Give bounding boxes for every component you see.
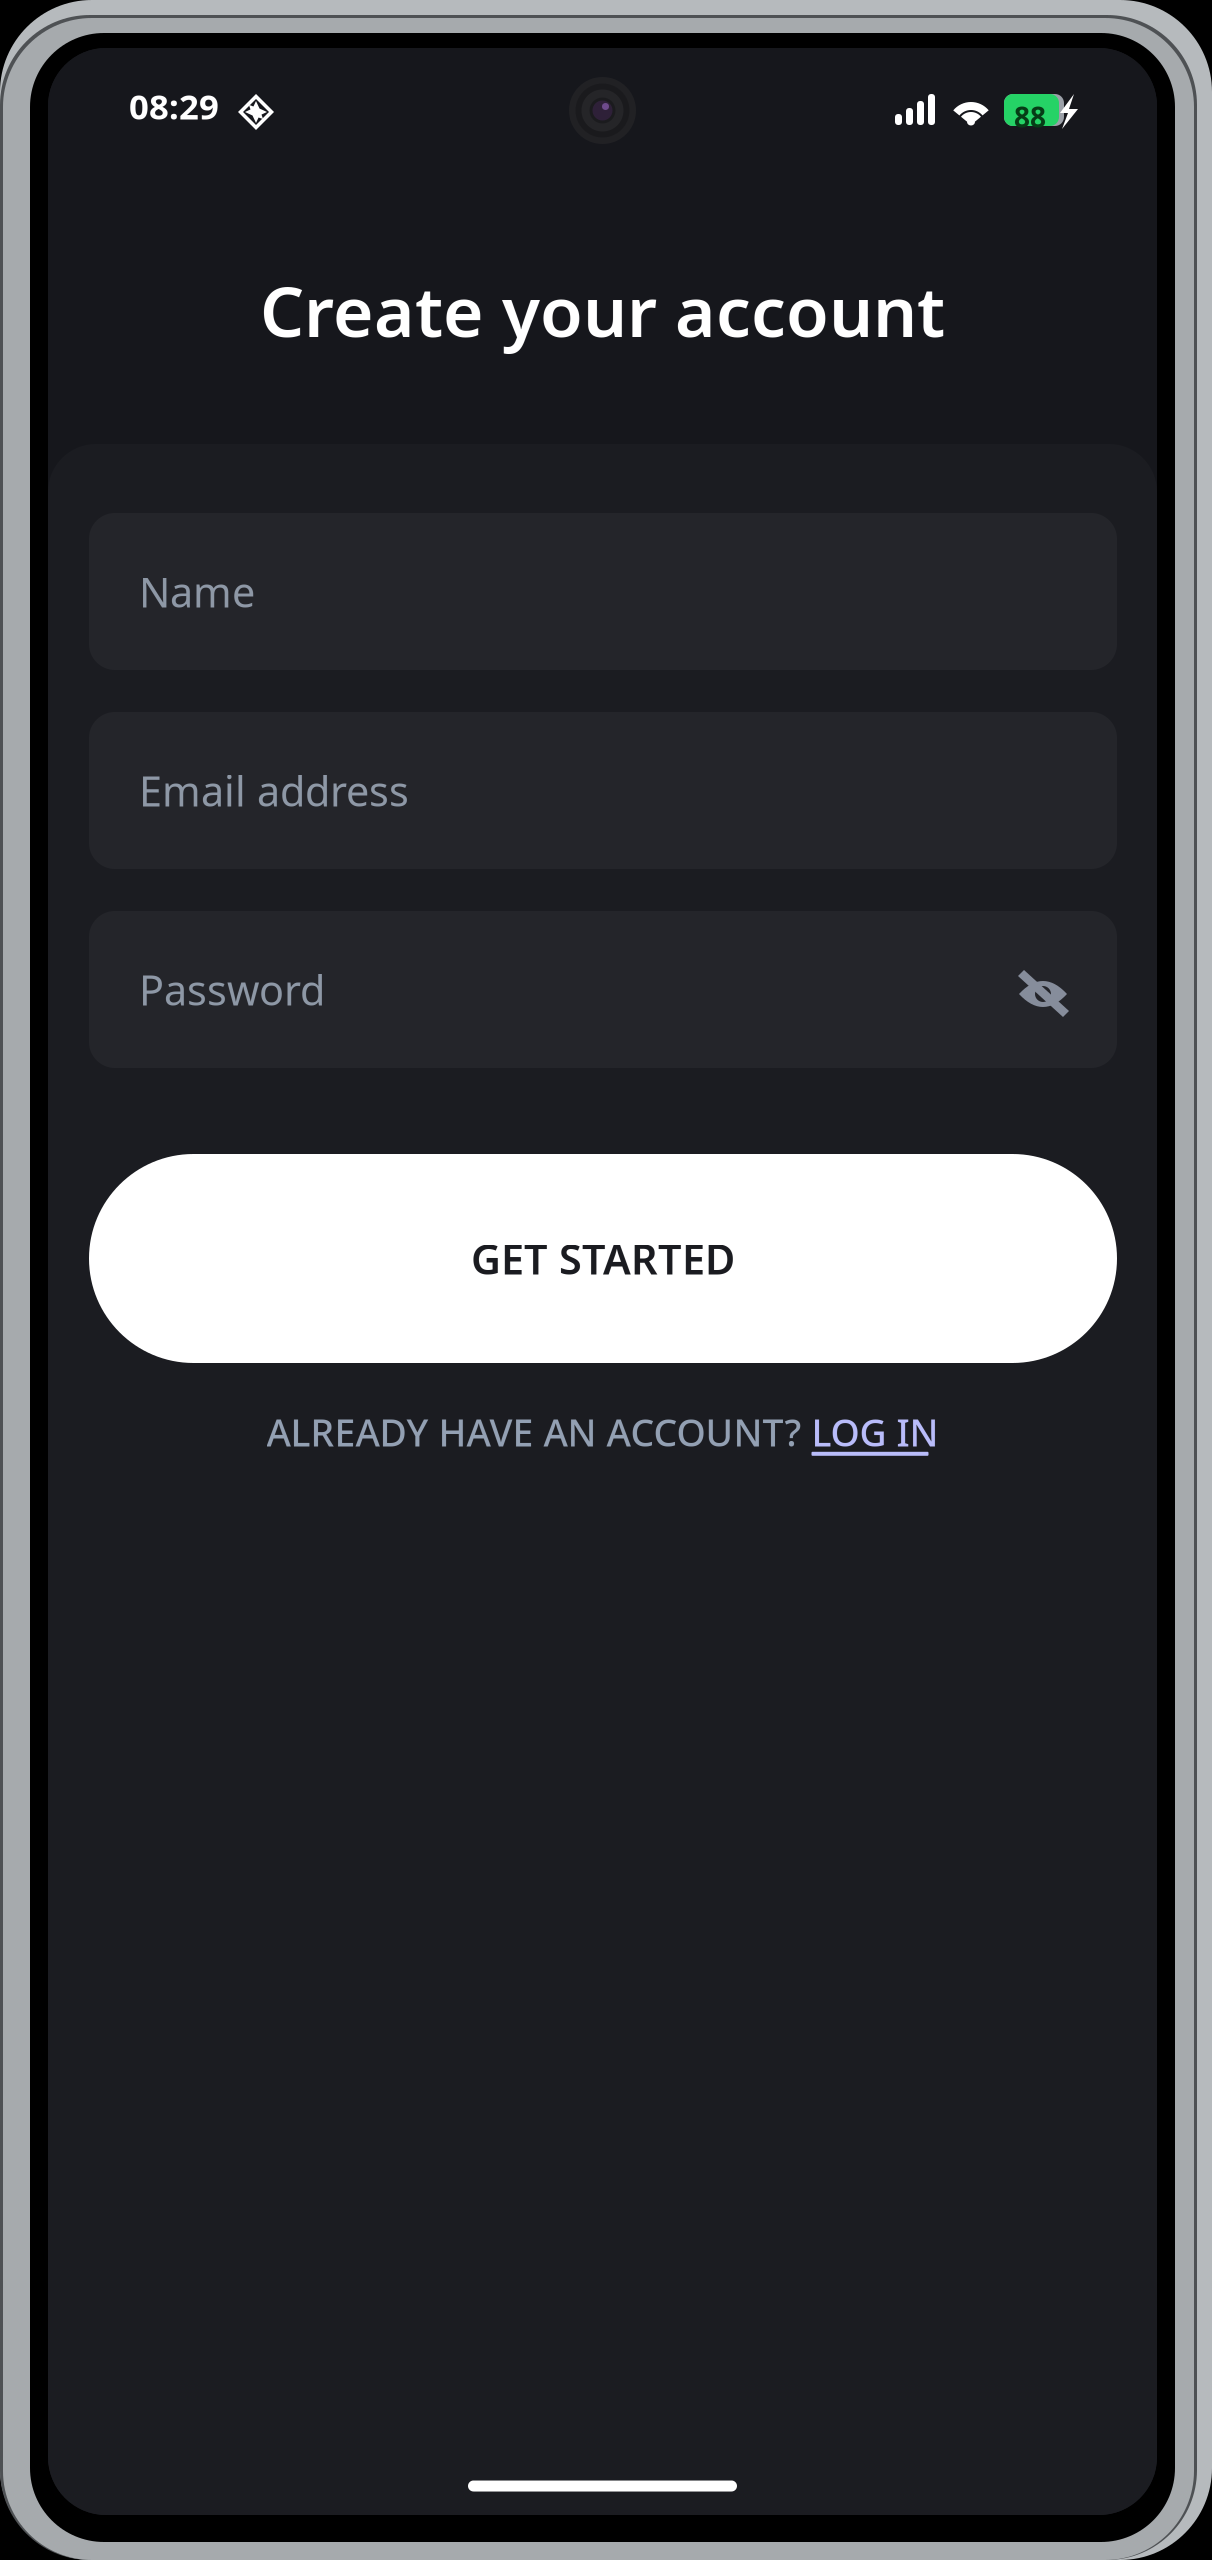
staticText: GET STARTED [471, 1231, 735, 1286]
staticText: Create your account [260, 264, 945, 356]
button[interactable]: ALREADY HAVE AN ACCOUNT? [48, 1404, 1157, 1460]
staticText: ALREADY HAVE AN ACCOUNT? [266, 1407, 811, 1457]
button[interactable]: Name [89, 513, 1117, 670]
button[interactable]: Password [89, 911, 1117, 1068]
staticText: 88 [1014, 98, 1046, 135]
staticText: Email address [139, 763, 409, 818]
staticText: Name [139, 564, 255, 619]
button[interactable]: GET STARTED [89, 1154, 1117, 1363]
button[interactable]: Email address [89, 712, 1117, 869]
staticText: LOG IN [811, 1407, 938, 1457]
staticText: 08:29 [129, 83, 219, 129]
button[interactable]: Show password [995, 946, 1091, 1042]
staticText: Password [139, 962, 325, 1017]
